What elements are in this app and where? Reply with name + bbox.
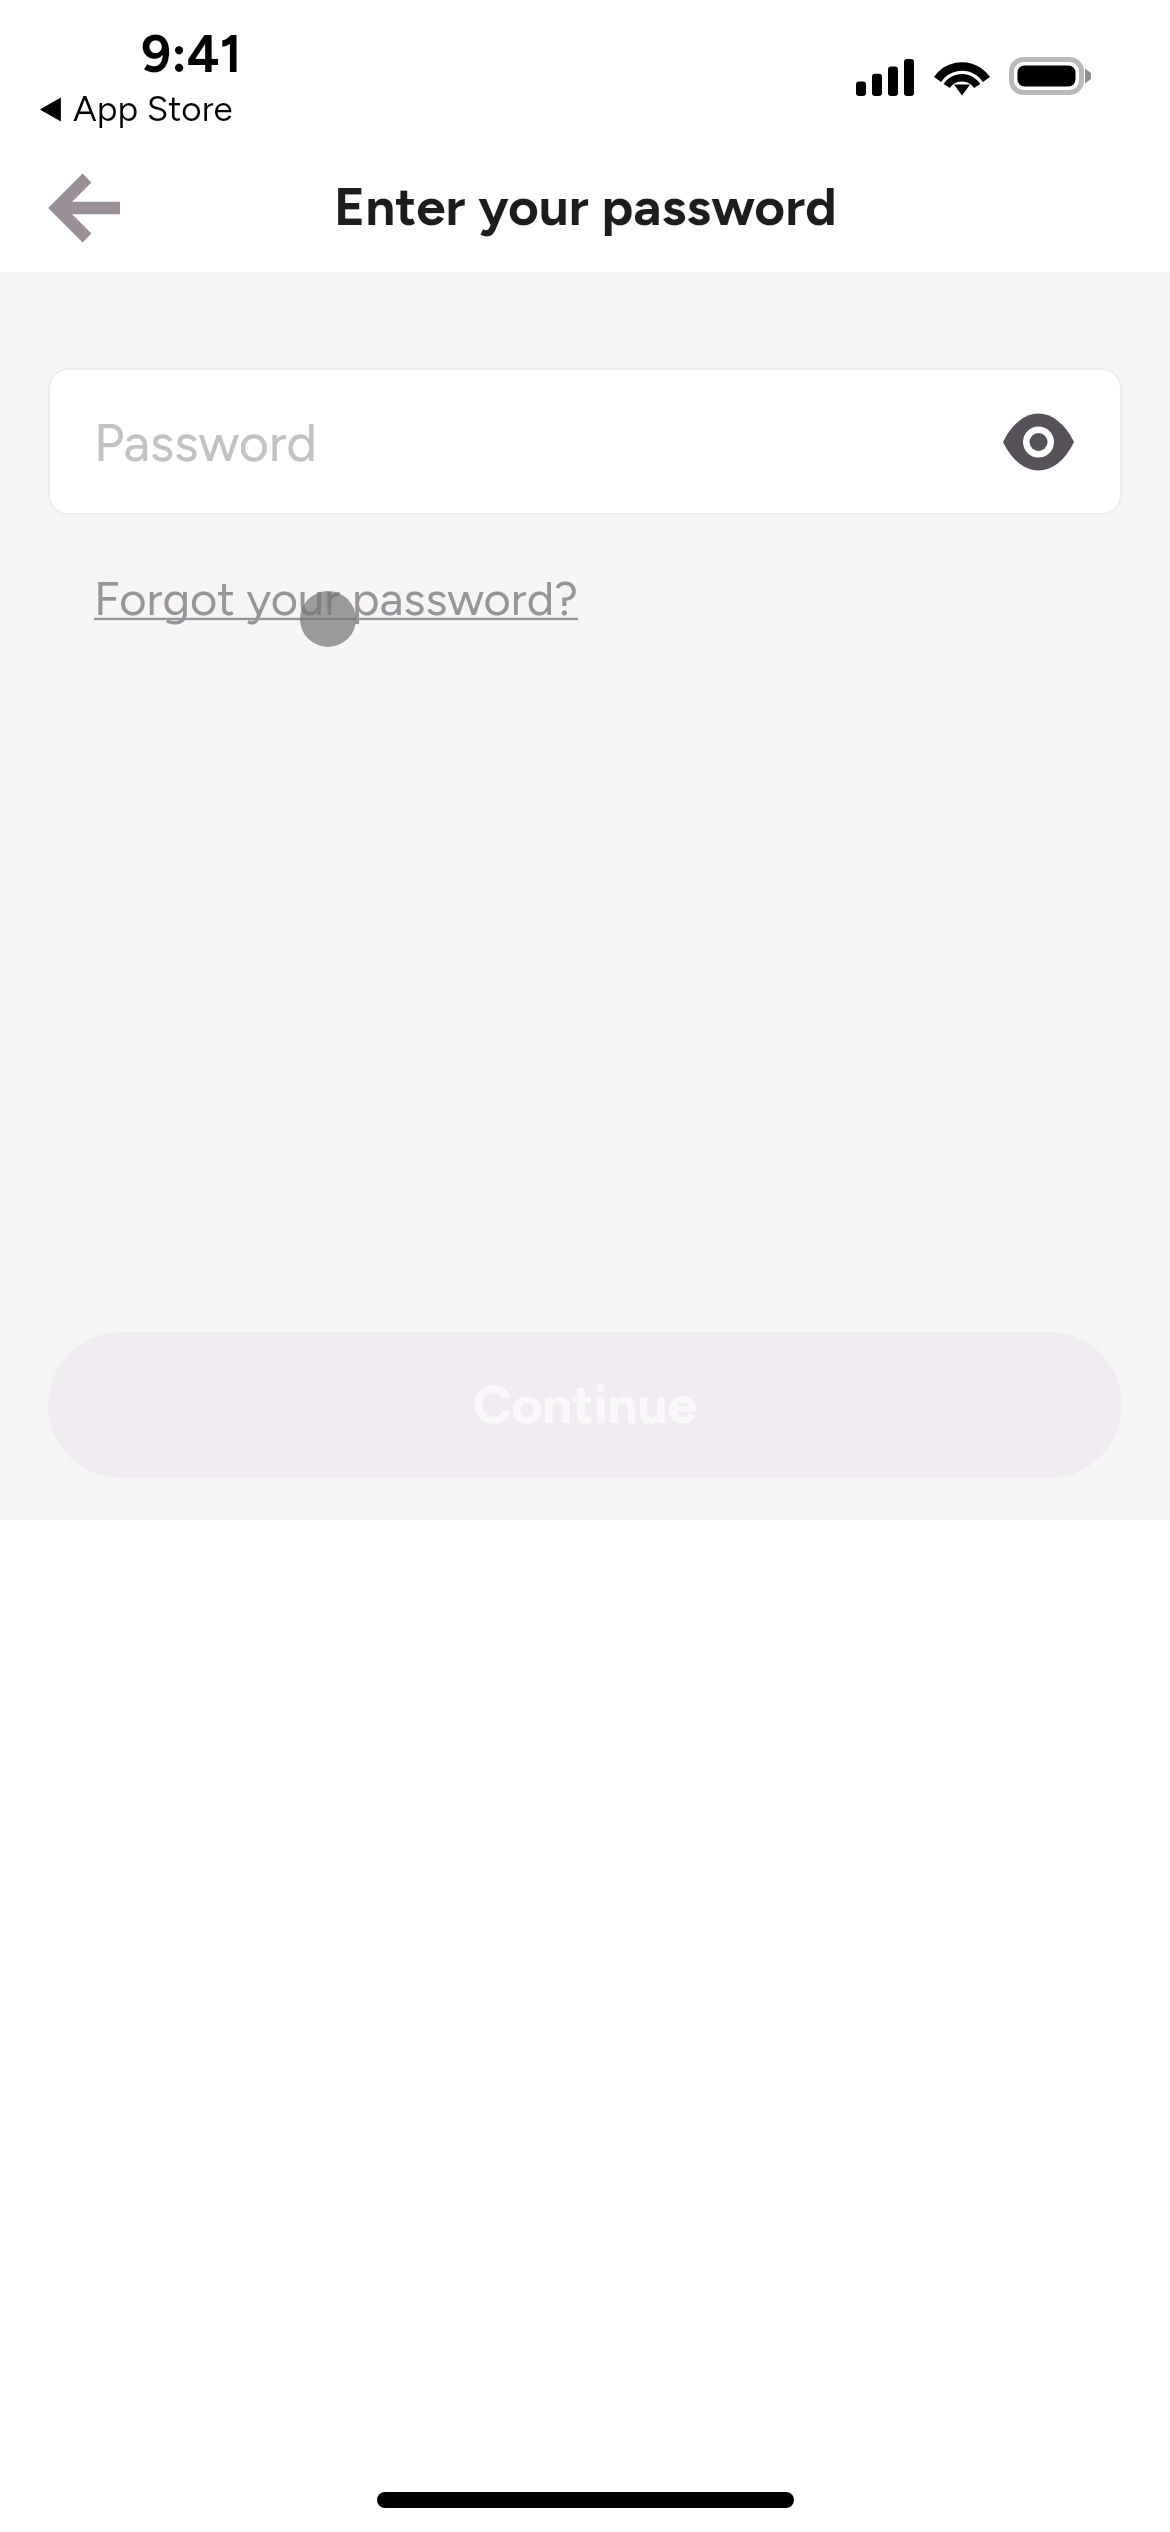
staticText: Password (94, 412, 317, 474)
staticText: Enter your password (334, 175, 837, 239)
button[interactable]: Password (48, 368, 1122, 515)
other: Cellular signal (856, 59, 914, 96)
button[interactable]: Forgot your password? (94, 570, 578, 626)
staticText: 9:41 (141, 23, 242, 85)
staticText: App Store (73, 88, 233, 130)
button[interactable]: Show password (988, 392, 1088, 492)
staticText: Forgot your password? (94, 570, 578, 626)
other: Wi-Fi (936, 58, 988, 96)
staticText: Continue (473, 1373, 698, 1437)
button[interactable]: App Store (39, 88, 233, 130)
button[interactable]: Back (30, 154, 138, 262)
other: Battery full (1009, 57, 1091, 95)
